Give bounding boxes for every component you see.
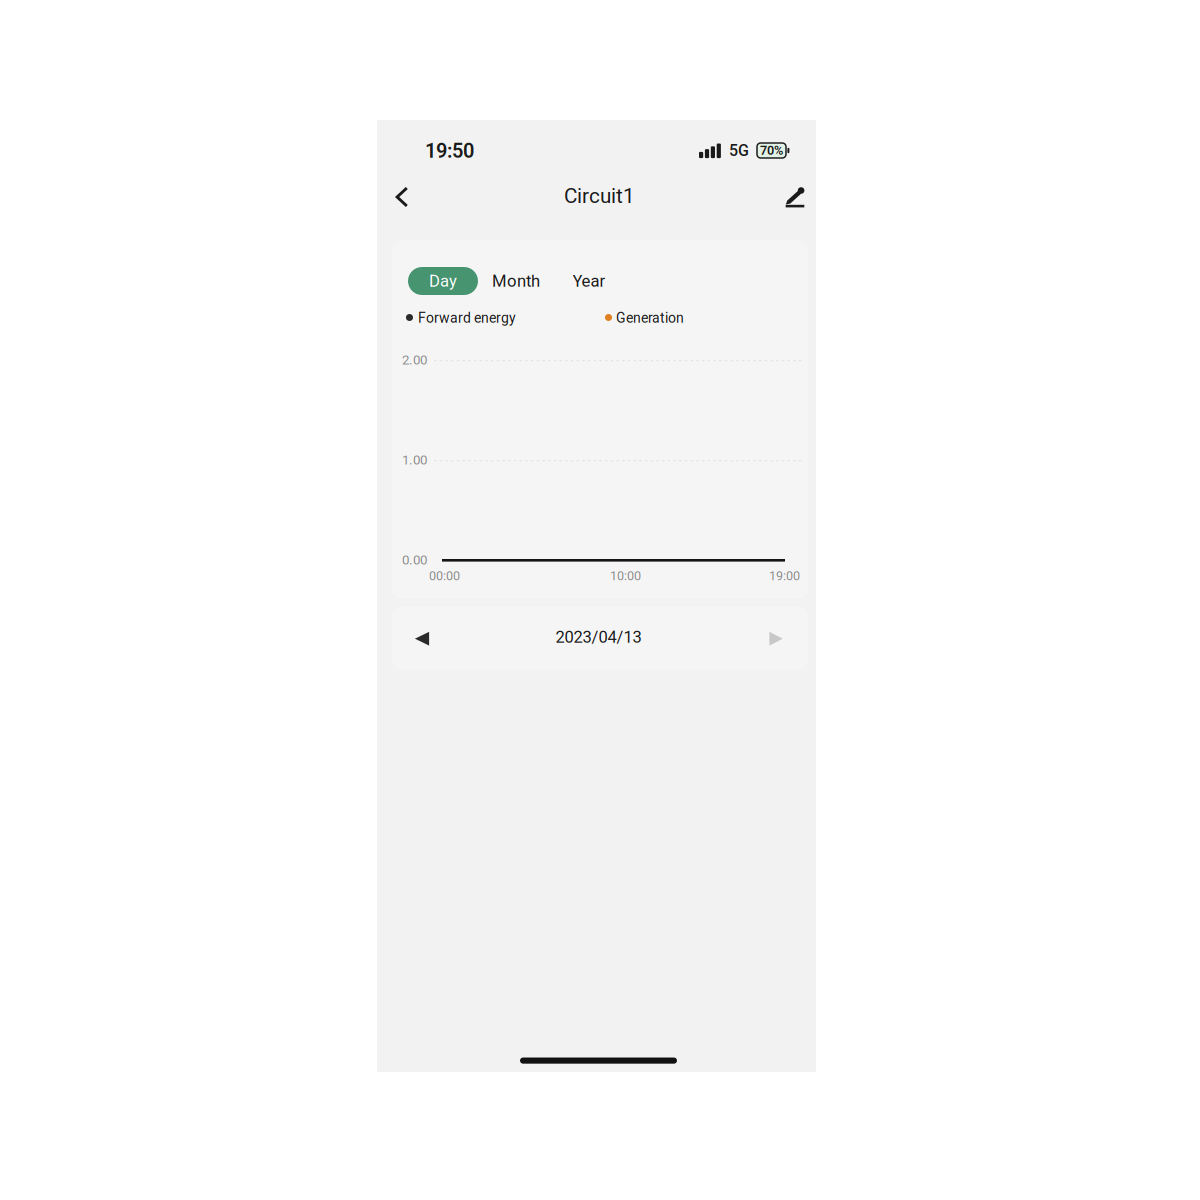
- button[interactable]: Next day: [754, 617, 798, 661]
- staticText: 2.00: [402, 352, 427, 368]
- staticText: 70%: [760, 143, 783, 158]
- staticText: 0.00: [402, 552, 427, 568]
- staticText: 10:00: [610, 569, 641, 583]
- staticText: 19:00: [769, 569, 800, 583]
- staticText: Circuit1: [564, 184, 635, 208]
- button[interactable]: Month: [486, 267, 546, 295]
- staticText: 1.00: [402, 452, 427, 468]
- button[interactable]: Back: [380, 175, 424, 219]
- button[interactable]: Day: [408, 267, 478, 295]
- staticText: Year: [572, 271, 605, 291]
- button[interactable]: Year: [564, 267, 614, 295]
- staticText: Forward energy: [418, 310, 516, 326]
- staticText: Day: [429, 271, 457, 291]
- staticText: 5G: [729, 141, 749, 160]
- staticText: 00:00: [429, 569, 460, 583]
- staticText: 19:50: [425, 139, 474, 163]
- staticText: Month: [492, 271, 540, 291]
- staticText: 2023/04/13: [555, 627, 641, 647]
- button[interactable]: Previous day: [400, 617, 444, 661]
- button[interactable]: Edit: [773, 175, 817, 219]
- staticText: Generation: [616, 310, 684, 326]
